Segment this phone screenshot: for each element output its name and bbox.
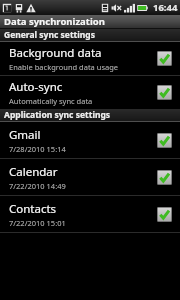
staticText: General sync settings bbox=[4, 29, 95, 41]
staticText: Automatically sync data bbox=[9, 96, 93, 106]
button[interactable]: Toggle sync bbox=[156, 50, 173, 67]
button[interactable]: Toggle sync bbox=[156, 169, 173, 186]
button[interactable]: Background data bbox=[0, 42, 180, 75]
button[interactable]: Auto-sync bbox=[0, 76, 180, 109]
staticText: Enable background data usage bbox=[9, 62, 119, 72]
button[interactable]: Toggle sync bbox=[156, 84, 173, 101]
button[interactable]: Calendar bbox=[0, 159, 180, 195]
staticText: 7/22/2010 14:49 bbox=[9, 181, 66, 191]
staticText: Gmail bbox=[9, 127, 41, 143]
staticText: Contacts bbox=[9, 201, 57, 217]
button[interactable]: Toggle sync bbox=[156, 132, 173, 149]
staticText: 7/22/2010 15:01 bbox=[9, 218, 66, 228]
staticText: Calendar bbox=[9, 164, 58, 180]
staticText: Background data bbox=[9, 45, 102, 61]
staticText: Auto-sync bbox=[9, 79, 63, 95]
staticText: 16:44 bbox=[153, 1, 178, 14]
staticText: 7/28/2010 15:14 bbox=[9, 144, 66, 154]
button[interactable]: Toggle sync bbox=[156, 206, 173, 223]
button[interactable]: Gmail bbox=[0, 122, 180, 158]
staticText: Data synchronization bbox=[4, 15, 105, 28]
staticText: Application sync settings bbox=[4, 109, 111, 121]
button[interactable]: Contacts bbox=[0, 196, 180, 232]
